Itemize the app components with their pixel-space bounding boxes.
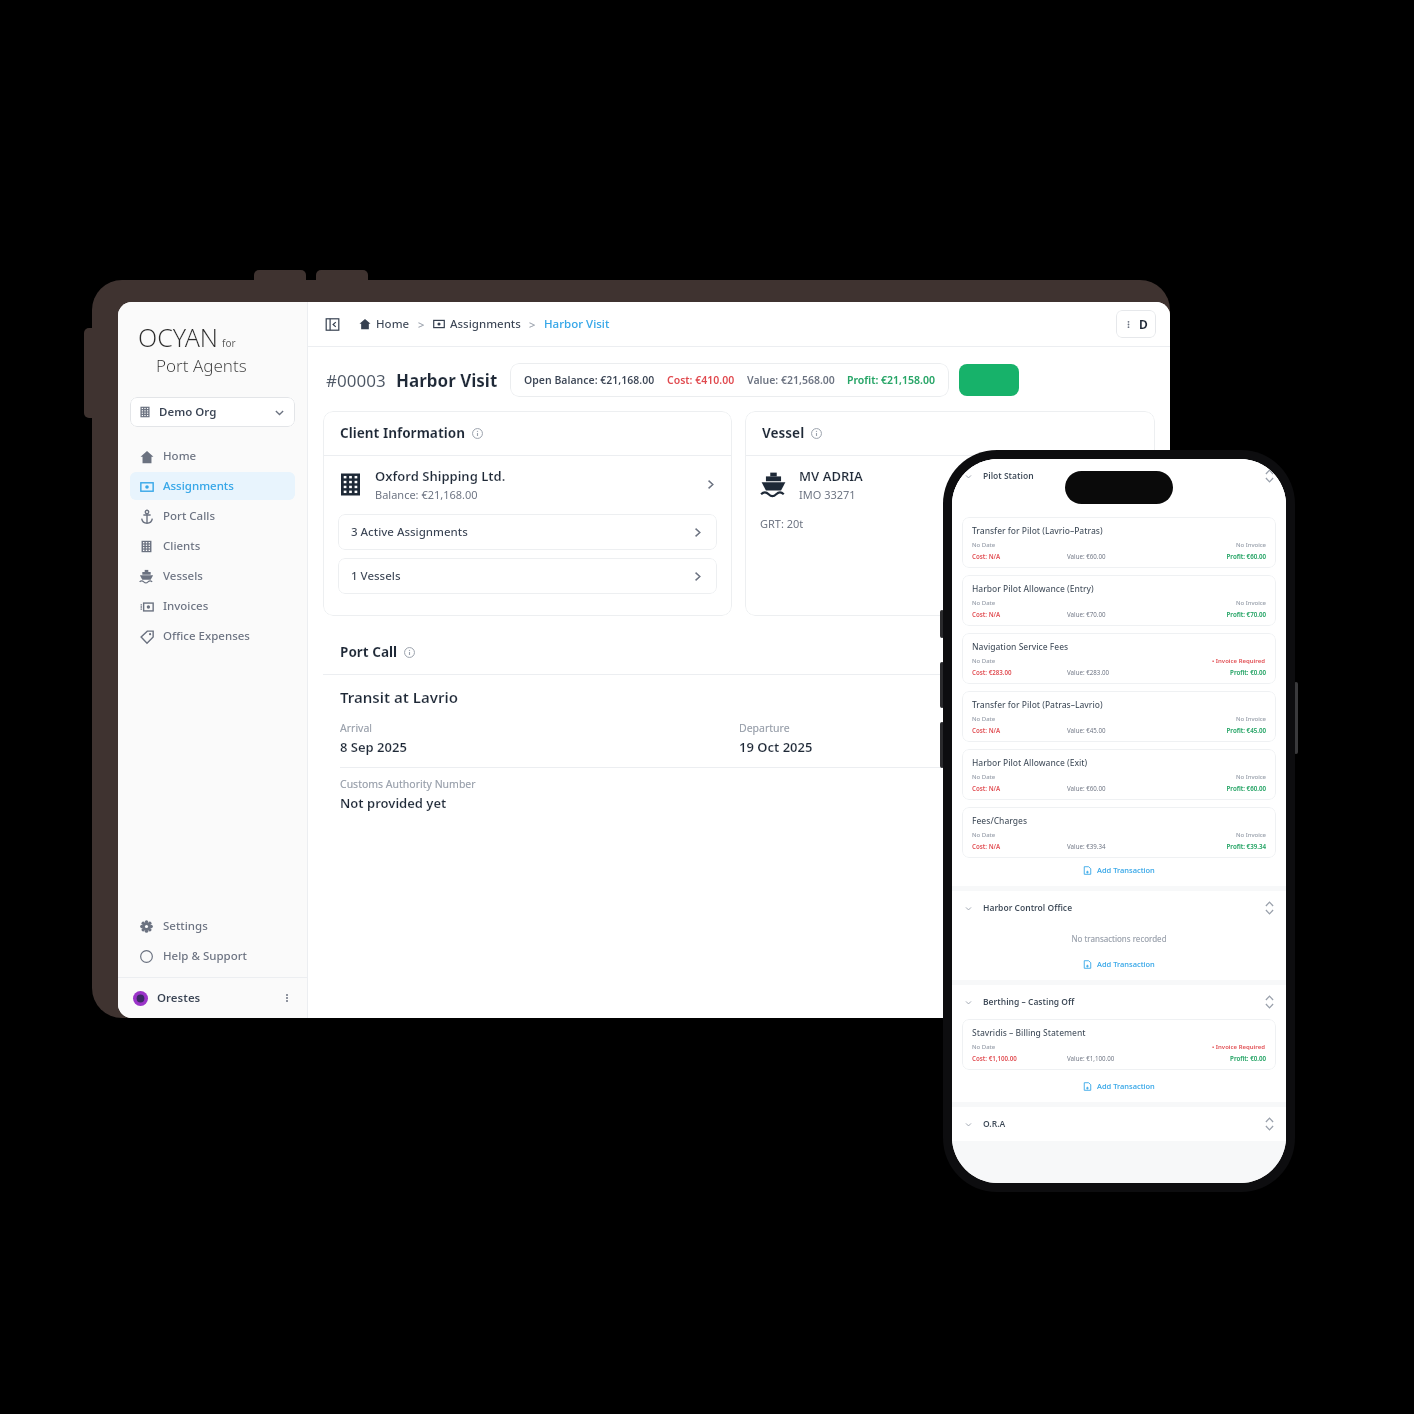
staticText: Add Transaction	[1097, 959, 1155, 969]
staticText: Customs Authority Number	[340, 777, 476, 791]
staticText: Client Information	[340, 424, 466, 442]
staticText: Profit: €45.00	[1171, 726, 1266, 734]
staticText: Transit at Lavrio	[340, 687, 458, 707]
staticText: Profit: €21,158.00	[847, 373, 935, 387]
staticText: Value: €45.00	[1067, 726, 1171, 734]
staticText: No Invoice	[1236, 773, 1266, 781]
staticText: Clients	[163, 538, 201, 554]
staticText: D	[1139, 316, 1148, 332]
staticText: • Invoice Required	[1212, 657, 1266, 665]
staticText: Profit: €0.00	[1171, 1054, 1266, 1062]
staticText: No Date	[972, 541, 1236, 549]
staticText: 19 Oct 2025	[739, 738, 813, 756]
staticText: Profit: €60.00	[1171, 552, 1266, 560]
staticText: Vessels	[163, 568, 203, 584]
button[interactable]: Berthing – Casting Off	[952, 985, 1286, 1019]
button[interactable]: Transfer for Pilot (Lavrio–Patras)	[962, 517, 1276, 568]
button[interactable]: Settings	[130, 912, 295, 940]
staticText: Cost: €283.00	[972, 668, 1067, 676]
staticText: • Invoice Required	[1212, 1043, 1266, 1051]
staticText: No transactions recorded	[952, 933, 1286, 944]
button[interactable]: Fees/Charges	[962, 807, 1276, 858]
staticText: #00003	[326, 369, 386, 392]
staticText: Invoices	[163, 598, 209, 614]
button[interactable]: Add Transaction	[952, 952, 1286, 976]
button[interactable]: Navigation Service Fees	[962, 633, 1276, 684]
button[interactable]: Harbor Pilot Allowance (Exit)	[962, 749, 1276, 800]
button[interactable]: Pilot Station	[952, 459, 1286, 493]
staticText: Add Transaction	[1097, 1081, 1155, 1091]
button[interactable]: Oxford Shipping Ltd.	[338, 467, 717, 502]
staticText: No Date	[972, 715, 1236, 723]
staticText: IMO 33271	[799, 487, 856, 502]
button[interactable]: Add Transaction	[952, 858, 1286, 882]
button[interactable]: Help & Support	[130, 942, 295, 970]
staticText: Balance: €21,168.00	[375, 487, 478, 502]
staticText: GRT: 20t	[760, 516, 804, 531]
staticText: Transfer for Pilot (Lavrio–Patras)	[972, 525, 1103, 537]
staticText: Cost: €1,100.00	[972, 1054, 1067, 1062]
button[interactable]: 1 Vessels	[338, 558, 717, 594]
staticText: Port Agents	[156, 354, 247, 377]
button[interactable]: Assignments	[130, 472, 295, 500]
staticText: OCYAN	[138, 320, 219, 354]
button[interactable]: O.R.A	[952, 1107, 1286, 1141]
button[interactable]: Transfer for Pilot (Patras–Lavrio)	[962, 691, 1276, 742]
staticText: Berthing – Casting Off	[983, 996, 1265, 1008]
button[interactable]: Harbor Visit	[544, 316, 610, 332]
staticText: No Invoice	[1236, 599, 1266, 607]
staticText: Port Call	[340, 643, 398, 661]
staticText: Cost: €410.00	[667, 373, 735, 387]
staticText: Vessel	[762, 424, 805, 442]
staticText: Assignments	[450, 316, 521, 332]
button[interactable]: Primary action	[959, 364, 1019, 396]
button[interactable]: Port Calls	[130, 502, 295, 530]
staticText: Cost: N/A	[972, 726, 1067, 734]
staticText: Value: €70.00	[1067, 610, 1171, 618]
staticText: Demo Org	[159, 404, 273, 420]
staticText: Cost: N/A	[972, 842, 1067, 850]
staticText: Harbor Pilot Allowance (Exit)	[972, 757, 1088, 769]
staticText: Help & Support	[163, 948, 247, 964]
button[interactable]: MV ADRIA	[760, 467, 1140, 502]
staticText: Arrival	[340, 721, 373, 735]
staticText: Harbor Pilot Allowance (Entry)	[972, 583, 1094, 595]
staticText: Departure	[739, 721, 790, 735]
staticText: Cost: N/A	[972, 610, 1067, 618]
button[interactable]: Stavridis – Billing Statement	[962, 1019, 1276, 1070]
staticText: No Date	[972, 831, 1236, 839]
staticText: Add Transaction	[1097, 865, 1155, 875]
button[interactable]: Add Transaction	[952, 1074, 1286, 1098]
staticText: No Invoice	[1236, 541, 1266, 549]
staticText: Profit: €60.00	[1171, 784, 1266, 792]
button[interactable]: Demo Org	[130, 397, 295, 427]
staticText: Value: €60.00	[1067, 784, 1171, 792]
staticText: 3 Active Assignments	[351, 524, 691, 540]
button[interactable]: Orestes	[118, 978, 307, 1018]
button[interactable]: Home	[130, 442, 295, 470]
staticText: 1 Vessels	[351, 568, 691, 584]
staticText: Assignments	[163, 478, 234, 494]
staticText: Profit: €0.00	[1171, 668, 1266, 676]
staticText: Value: €60.00	[1067, 552, 1171, 560]
button[interactable]: Home	[359, 316, 410, 332]
button[interactable]: Clients	[130, 532, 295, 560]
button[interactable]: Office Expenses	[130, 622, 295, 650]
staticText: MV ADRIA	[799, 467, 863, 485]
staticText: No Date	[972, 599, 1236, 607]
staticText: Value: €39.34	[1067, 842, 1171, 850]
staticText: No Date	[972, 773, 1236, 781]
staticText: No Date	[972, 1043, 1212, 1051]
button[interactable]: Vessels	[130, 562, 295, 590]
staticText: Home	[376, 316, 410, 332]
button[interactable]: Harbor Control Office	[952, 891, 1286, 925]
button[interactable]: Collapse sidebar	[322, 314, 343, 335]
staticText: No Invoice	[1236, 715, 1266, 723]
button[interactable]: D	[1116, 310, 1156, 338]
staticText: Value: €21,568.00	[747, 373, 835, 387]
button[interactable]: Assignments	[433, 316, 521, 332]
button[interactable]: Harbor Pilot Allowance (Entry)	[962, 575, 1276, 626]
button[interactable]: Invoices	[130, 592, 295, 620]
button[interactable]: 3 Active Assignments	[338, 514, 717, 550]
staticText: No Invoice	[1236, 831, 1266, 839]
